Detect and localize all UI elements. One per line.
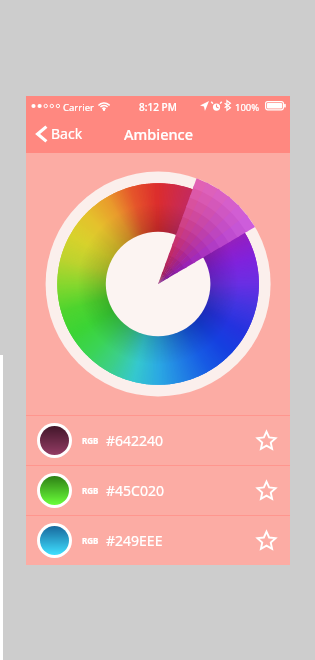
- button[interactable]: RGB: [26, 415, 290, 465]
- button[interactable]: RGB: [26, 465, 290, 515]
- staticText: RGB: [82, 435, 99, 446]
- staticText: Carrier: [63, 101, 94, 114]
- button[interactable]: Favorite: [249, 423, 283, 457]
- button[interactable]: Favorite: [249, 473, 283, 507]
- staticText: #249EEE: [106, 531, 163, 550]
- button[interactable]: Favorite: [249, 523, 283, 557]
- staticText: #642240: [106, 431, 164, 450]
- staticText: Back: [51, 124, 83, 143]
- staticText: #45C020: [106, 481, 164, 500]
- button[interactable]: RGB: [26, 515, 290, 565]
- button[interactable]: Back: [26, 121, 91, 146]
- staticText: 100%: [235, 101, 260, 114]
- staticText: 8:12 PM: [26, 100, 290, 114]
- staticText: RGB: [82, 535, 99, 546]
- staticText: RGB: [82, 485, 99, 496]
- staticText: Ambience: [124, 124, 193, 144]
